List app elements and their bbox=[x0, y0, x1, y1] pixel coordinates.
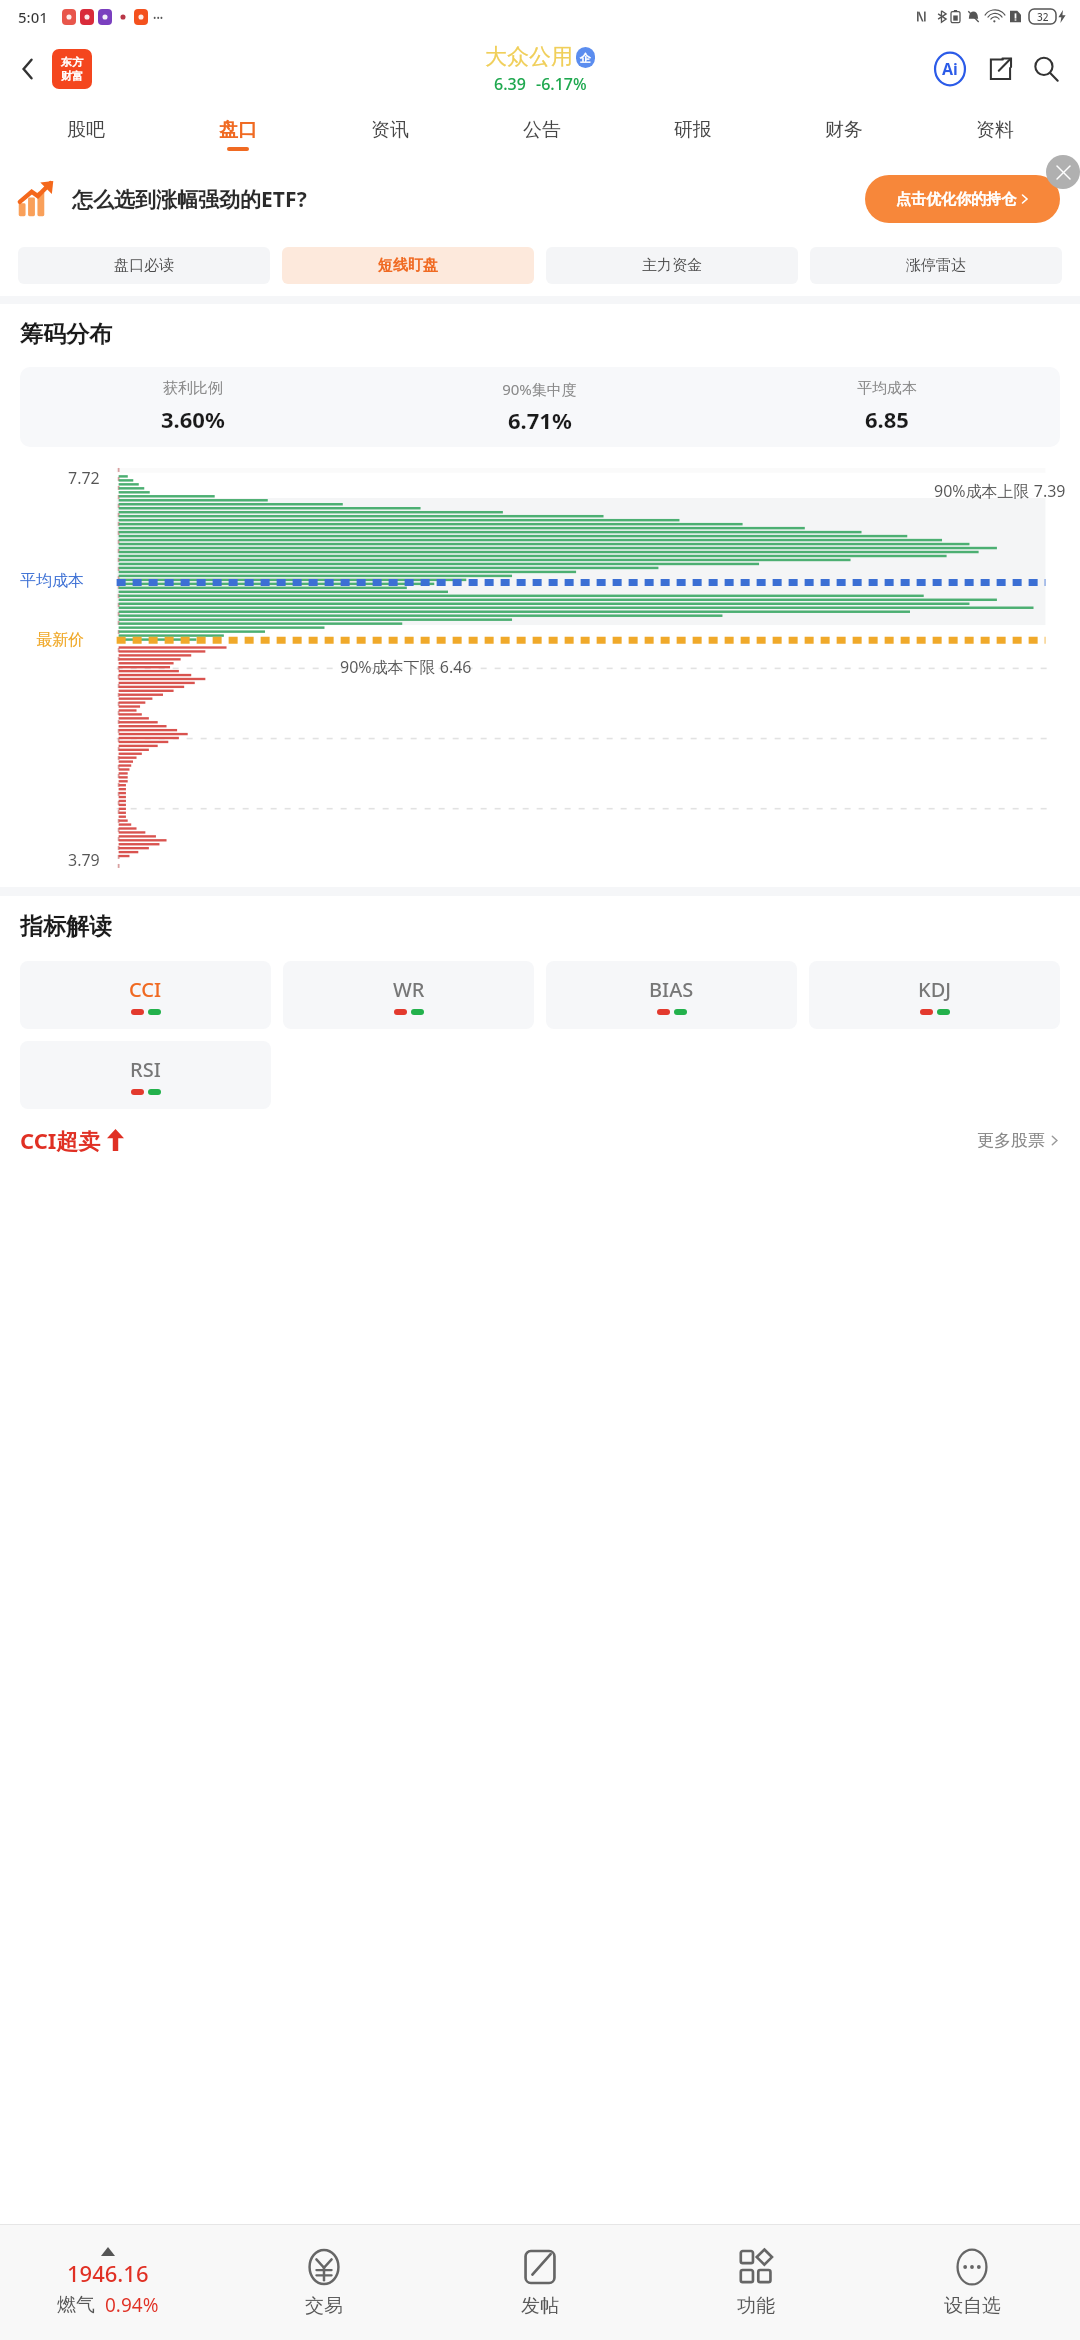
button[interactable]: 涨停雷达 bbox=[810, 247, 1062, 284]
button[interactable]: 设自选 bbox=[864, 2225, 1080, 2340]
staticText: 更多股票 bbox=[977, 1130, 1045, 1151]
staticText: BIAS bbox=[649, 976, 694, 1003]
staticText: 指标解读 bbox=[20, 912, 112, 941]
staticText: 点击优化你的持仓 bbox=[896, 190, 1016, 209]
staticText: 公告 bbox=[523, 118, 561, 142]
staticText: 5:01 bbox=[18, 7, 48, 27]
staticText: WR bbox=[393, 976, 425, 1003]
button[interactable]: 公告 bbox=[466, 105, 617, 163]
staticText: 6.71% bbox=[508, 405, 572, 435]
button[interactable]: 点击优化你的持仓 bbox=[865, 175, 1060, 223]
button[interactable]: 功能 bbox=[648, 2225, 864, 2340]
staticText: 大众公用 bbox=[485, 43, 573, 71]
staticText: CCI bbox=[129, 976, 162, 1003]
button[interactable]: 主力资金 bbox=[546, 247, 798, 284]
staticText: 研报 bbox=[674, 118, 712, 142]
staticText: 6.85 bbox=[865, 404, 909, 434]
button[interactable]: AI assistant bbox=[928, 47, 972, 91]
button[interactable]: 怎么选到涨幅强劲的ETF? bbox=[0, 163, 1080, 235]
button[interactable]: 发帖 bbox=[432, 2225, 648, 2340]
button[interactable]: 研报 bbox=[617, 105, 768, 163]
button[interactable]: RSI bbox=[20, 1041, 271, 1109]
button[interactable]: East Money home bbox=[52, 49, 92, 89]
button[interactable]: WR bbox=[283, 961, 534, 1029]
staticText: 平均成本 bbox=[857, 379, 917, 398]
staticText: ••• bbox=[153, 11, 164, 23]
staticText: 交易 bbox=[305, 2294, 343, 2318]
staticText: 股吧 bbox=[67, 118, 105, 142]
staticText: 6.39 bbox=[494, 73, 526, 95]
button[interactable]: 短线盯盘 bbox=[282, 247, 534, 284]
staticText: 功能 bbox=[737, 2294, 775, 2318]
staticText: 筹码分布 bbox=[20, 320, 112, 349]
button[interactable]: BIAS bbox=[546, 961, 797, 1029]
staticText: 盘口必读 bbox=[114, 256, 174, 275]
button[interactable]: 1946.16 bbox=[0, 2225, 216, 2340]
button[interactable]: KDJ bbox=[809, 961, 1060, 1029]
staticText: 90%成本上限 7.39 bbox=[934, 480, 1066, 502]
staticText: 32 bbox=[1037, 10, 1049, 24]
staticText: -6.17% bbox=[536, 73, 587, 95]
staticText: 最新价 bbox=[36, 630, 84, 650]
staticText: 获利比例 bbox=[163, 379, 223, 398]
staticText: 盘口 bbox=[219, 118, 257, 142]
staticText: 涨停雷达 bbox=[906, 256, 966, 275]
staticText: 东方 bbox=[61, 55, 83, 69]
button[interactable]: Share bbox=[978, 47, 1022, 91]
staticText: 短线盯盘 bbox=[378, 256, 438, 275]
staticText: 平均成本 bbox=[20, 571, 84, 591]
button[interactable]: 财务 bbox=[768, 105, 919, 163]
button[interactable]: 大众公用 bbox=[485, 43, 595, 95]
staticText: 0.94% bbox=[105, 2292, 159, 2318]
staticText: 设自选 bbox=[944, 2294, 1001, 2318]
button[interactable]: 盘口 bbox=[162, 105, 314, 163]
button[interactable]: 更多股票 bbox=[977, 1130, 1060, 1151]
staticText: CCI超卖 bbox=[20, 1125, 101, 1155]
staticText: Ai bbox=[942, 58, 958, 80]
staticText: 7.72 bbox=[68, 467, 100, 489]
button[interactable]: 盘口必读 bbox=[18, 247, 270, 284]
staticText: 90%成本下限 6.46 bbox=[340, 656, 472, 678]
staticText: 3.60% bbox=[161, 404, 225, 434]
staticText: 90%集中度 bbox=[502, 379, 577, 399]
button[interactable]: 股吧 bbox=[10, 105, 162, 163]
button[interactable]: Search bbox=[1024, 47, 1068, 91]
staticText: 资料 bbox=[976, 118, 1014, 142]
staticText: KDJ bbox=[918, 976, 952, 1003]
button[interactable]: Back bbox=[6, 47, 50, 91]
staticText: 燃气 bbox=[57, 2293, 95, 2317]
staticText: 企 bbox=[580, 51, 591, 65]
button[interactable]: CCI bbox=[20, 961, 271, 1029]
staticText: 主力资金 bbox=[642, 256, 702, 275]
button[interactable]: 资讯 bbox=[314, 105, 466, 163]
button[interactable]: Close ad bbox=[1046, 155, 1080, 189]
button[interactable]: 交易 bbox=[216, 2225, 432, 2340]
staticText: RSI bbox=[130, 1056, 161, 1083]
staticText: 1946.16 bbox=[67, 2258, 149, 2288]
staticText: 怎么选到涨幅强劲的ETF? bbox=[72, 185, 307, 214]
staticText: 财务 bbox=[825, 118, 863, 142]
button[interactable]: 资料 bbox=[919, 105, 1070, 163]
staticText: 3.79 bbox=[68, 849, 100, 871]
staticText: 资讯 bbox=[371, 118, 409, 142]
button[interactable]: 获利比例 bbox=[20, 379, 1060, 435]
staticText: 财富 bbox=[61, 69, 83, 83]
staticText: 发帖 bbox=[521, 2294, 559, 2318]
